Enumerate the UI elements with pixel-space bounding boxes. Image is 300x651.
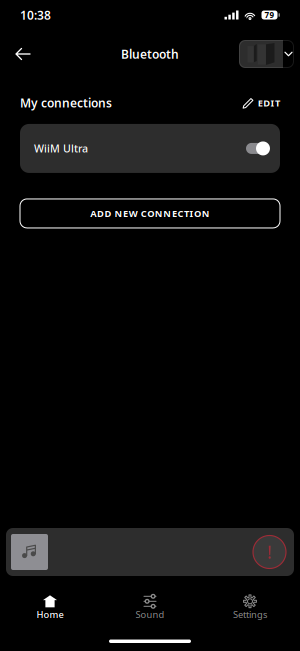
staticText: WiiM Ultra	[34, 141, 88, 156]
button[interactable]: Back	[0, 38, 40, 69]
button[interactable]: Now playing	[0, 528, 300, 591]
staticText: 79	[264, 10, 274, 20]
staticText: Bluetooth	[121, 46, 179, 62]
button[interactable]: WiiM Ultra, connected	[246, 140, 270, 156]
staticText: 10:38	[20, 7, 51, 23]
staticText: !	[267, 540, 272, 563]
button[interactable]: Sound	[100, 591, 200, 625]
button[interactable]: Settings	[200, 591, 300, 625]
staticText: My connections	[20, 95, 112, 111]
staticText: Settings	[233, 608, 267, 621]
staticText: ADD NEW CONNECTION	[90, 207, 210, 220]
button[interactable]: Choose device	[239, 40, 300, 68]
button[interactable]: ADD NEW CONNECTION	[0, 173, 300, 228]
staticText: EDIT	[258, 97, 280, 109]
staticText: Sound	[135, 608, 164, 621]
button[interactable]: Home	[0, 591, 100, 625]
button[interactable]: EDIT	[243, 97, 280, 109]
staticText: Home	[36, 608, 63, 621]
